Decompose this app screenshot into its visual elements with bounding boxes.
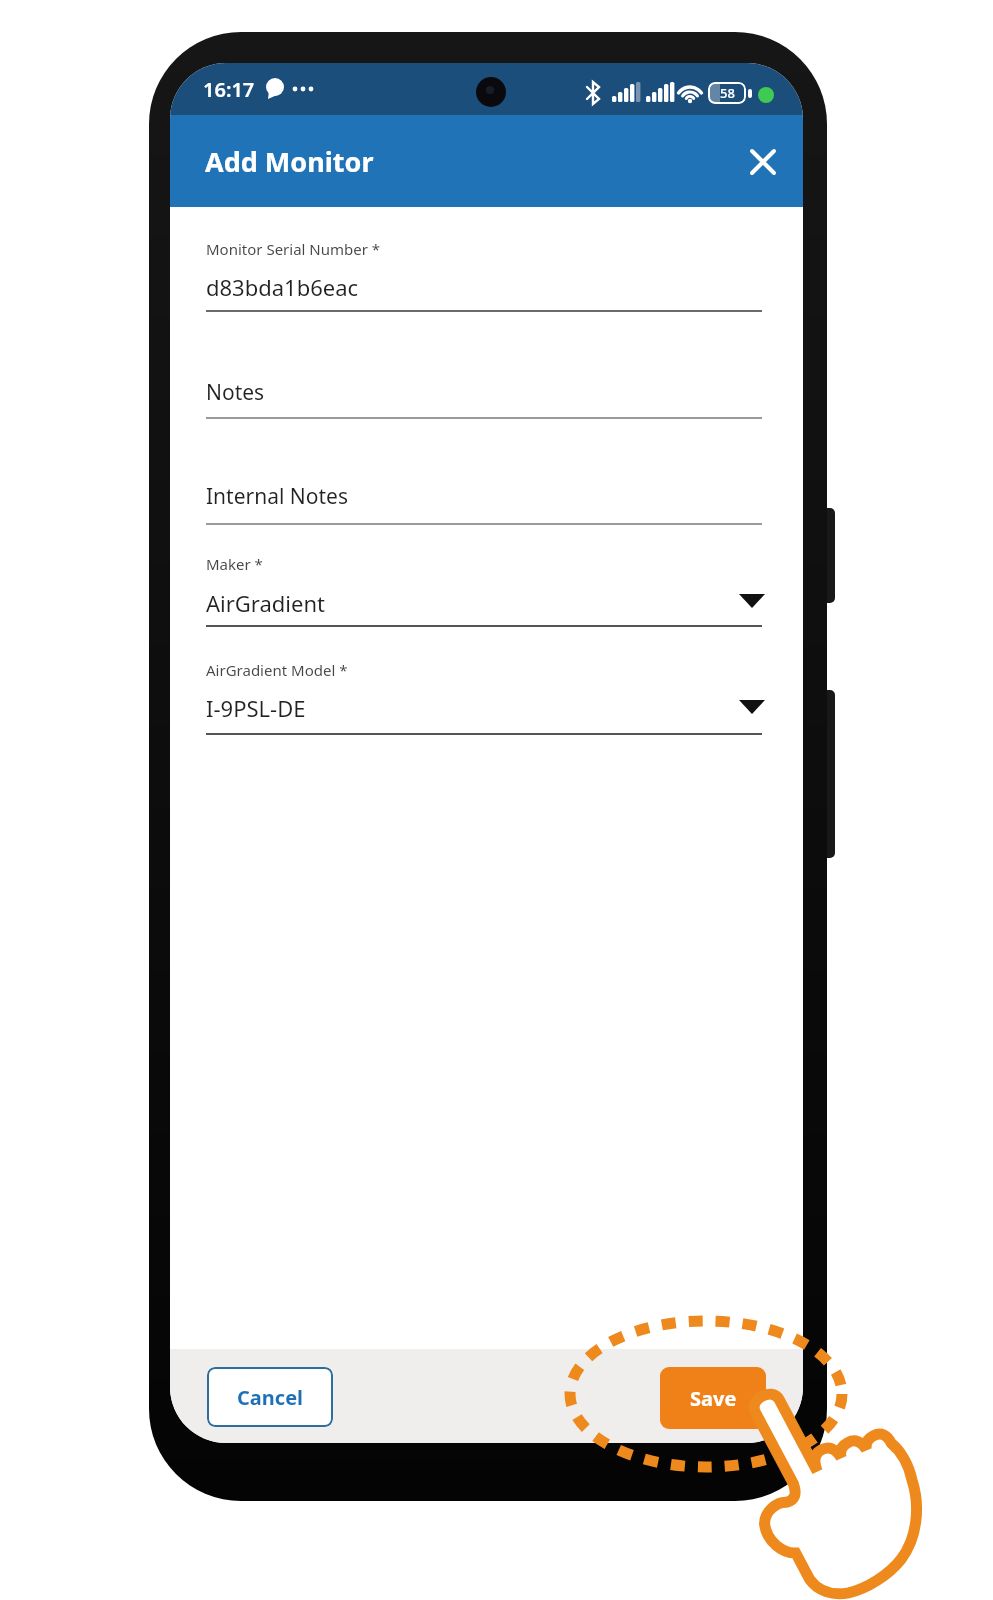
button[interactable]: Cancel — [207, 1367, 333, 1427]
button[interactable]: AirGradient — [206, 585, 726, 621]
staticText: d83bda1b6eac — [206, 272, 359, 302]
staticText: Add Monitor — [205, 143, 374, 180]
staticText: Monitor Serial Number * — [206, 239, 381, 259]
button[interactable]: Internal Notes — [206, 478, 726, 514]
staticText: Save — [690, 1385, 737, 1412]
staticText: Cancel — [237, 1384, 304, 1411]
staticText: I-9PSL-DE — [206, 693, 306, 723]
staticText: AirGradient — [206, 588, 325, 618]
button[interactable]: I-9PSL-DE — [206, 690, 726, 726]
staticText: Notes — [206, 378, 265, 407]
button[interactable] — [740, 139, 786, 185]
button[interactable]: d83bda1b6eac — [206, 269, 726, 305]
staticText: 16:17 — [203, 76, 255, 103]
button[interactable]: Notes — [206, 374, 726, 410]
staticText: Maker * — [206, 554, 263, 574]
staticText: 58 — [720, 84, 735, 102]
button[interactable]: Save — [660, 1367, 766, 1429]
staticText: AirGradient Model * — [206, 660, 348, 680]
staticText: Internal Notes — [206, 482, 348, 511]
